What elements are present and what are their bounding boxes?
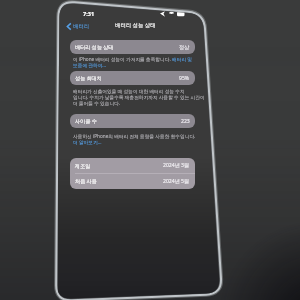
staticText: 배터리 성능 상태 bbox=[75, 44, 114, 51]
staticText: 2024년 5월 bbox=[163, 178, 190, 185]
staticText: 더 알아보기... bbox=[73, 139, 102, 145]
button[interactable]: 사이클 수 bbox=[70, 114, 195, 128]
staticText: 입니다. 수치가 낮을수록 재충전하기까지 사용할 수 있는 시간이 bbox=[73, 94, 205, 100]
button[interactable]: 배터리 성능 상태 bbox=[70, 40, 195, 54]
staticText: 7:31 bbox=[83, 10, 95, 18]
staticText: 사용하신 iPhone의 배터리 전체 용량을 사용한 횟수입니다. bbox=[73, 133, 196, 139]
staticText: 배터리 성능 상태 bbox=[115, 21, 156, 28]
staticText: 성능 최대치 bbox=[75, 75, 102, 82]
button[interactable]: 제조일 bbox=[70, 158, 195, 173]
staticText: 보증에 관하여... bbox=[73, 62, 107, 68]
staticText: 배터리가 신출어있을 때 성능이 대한 배터리 성능 수치 bbox=[73, 88, 185, 94]
staticText: 처음 사용 bbox=[75, 178, 97, 185]
staticText: 95% bbox=[179, 75, 190, 82]
staticText: 이 iPhone 배터리 성능이 가저지를 충족합니다. bbox=[73, 56, 172, 62]
staticText: 배터리 및 bbox=[172, 56, 192, 62]
button[interactable]: 배터리 bbox=[67, 21, 90, 31]
staticText: 2024년 3월 bbox=[163, 162, 190, 169]
staticText: 223 bbox=[181, 118, 190, 125]
button[interactable]: 성능 최대치 bbox=[70, 71, 195, 85]
button[interactable]: 처음 사용 bbox=[70, 174, 195, 189]
staticText: 제조일 bbox=[75, 163, 91, 169]
staticText: 배터리 bbox=[73, 23, 90, 30]
staticText: 더 줄어들 수 있습니다. bbox=[73, 100, 121, 106]
staticText: 사이클 수 bbox=[75, 118, 97, 125]
staticText: 정상 bbox=[179, 44, 190, 50]
